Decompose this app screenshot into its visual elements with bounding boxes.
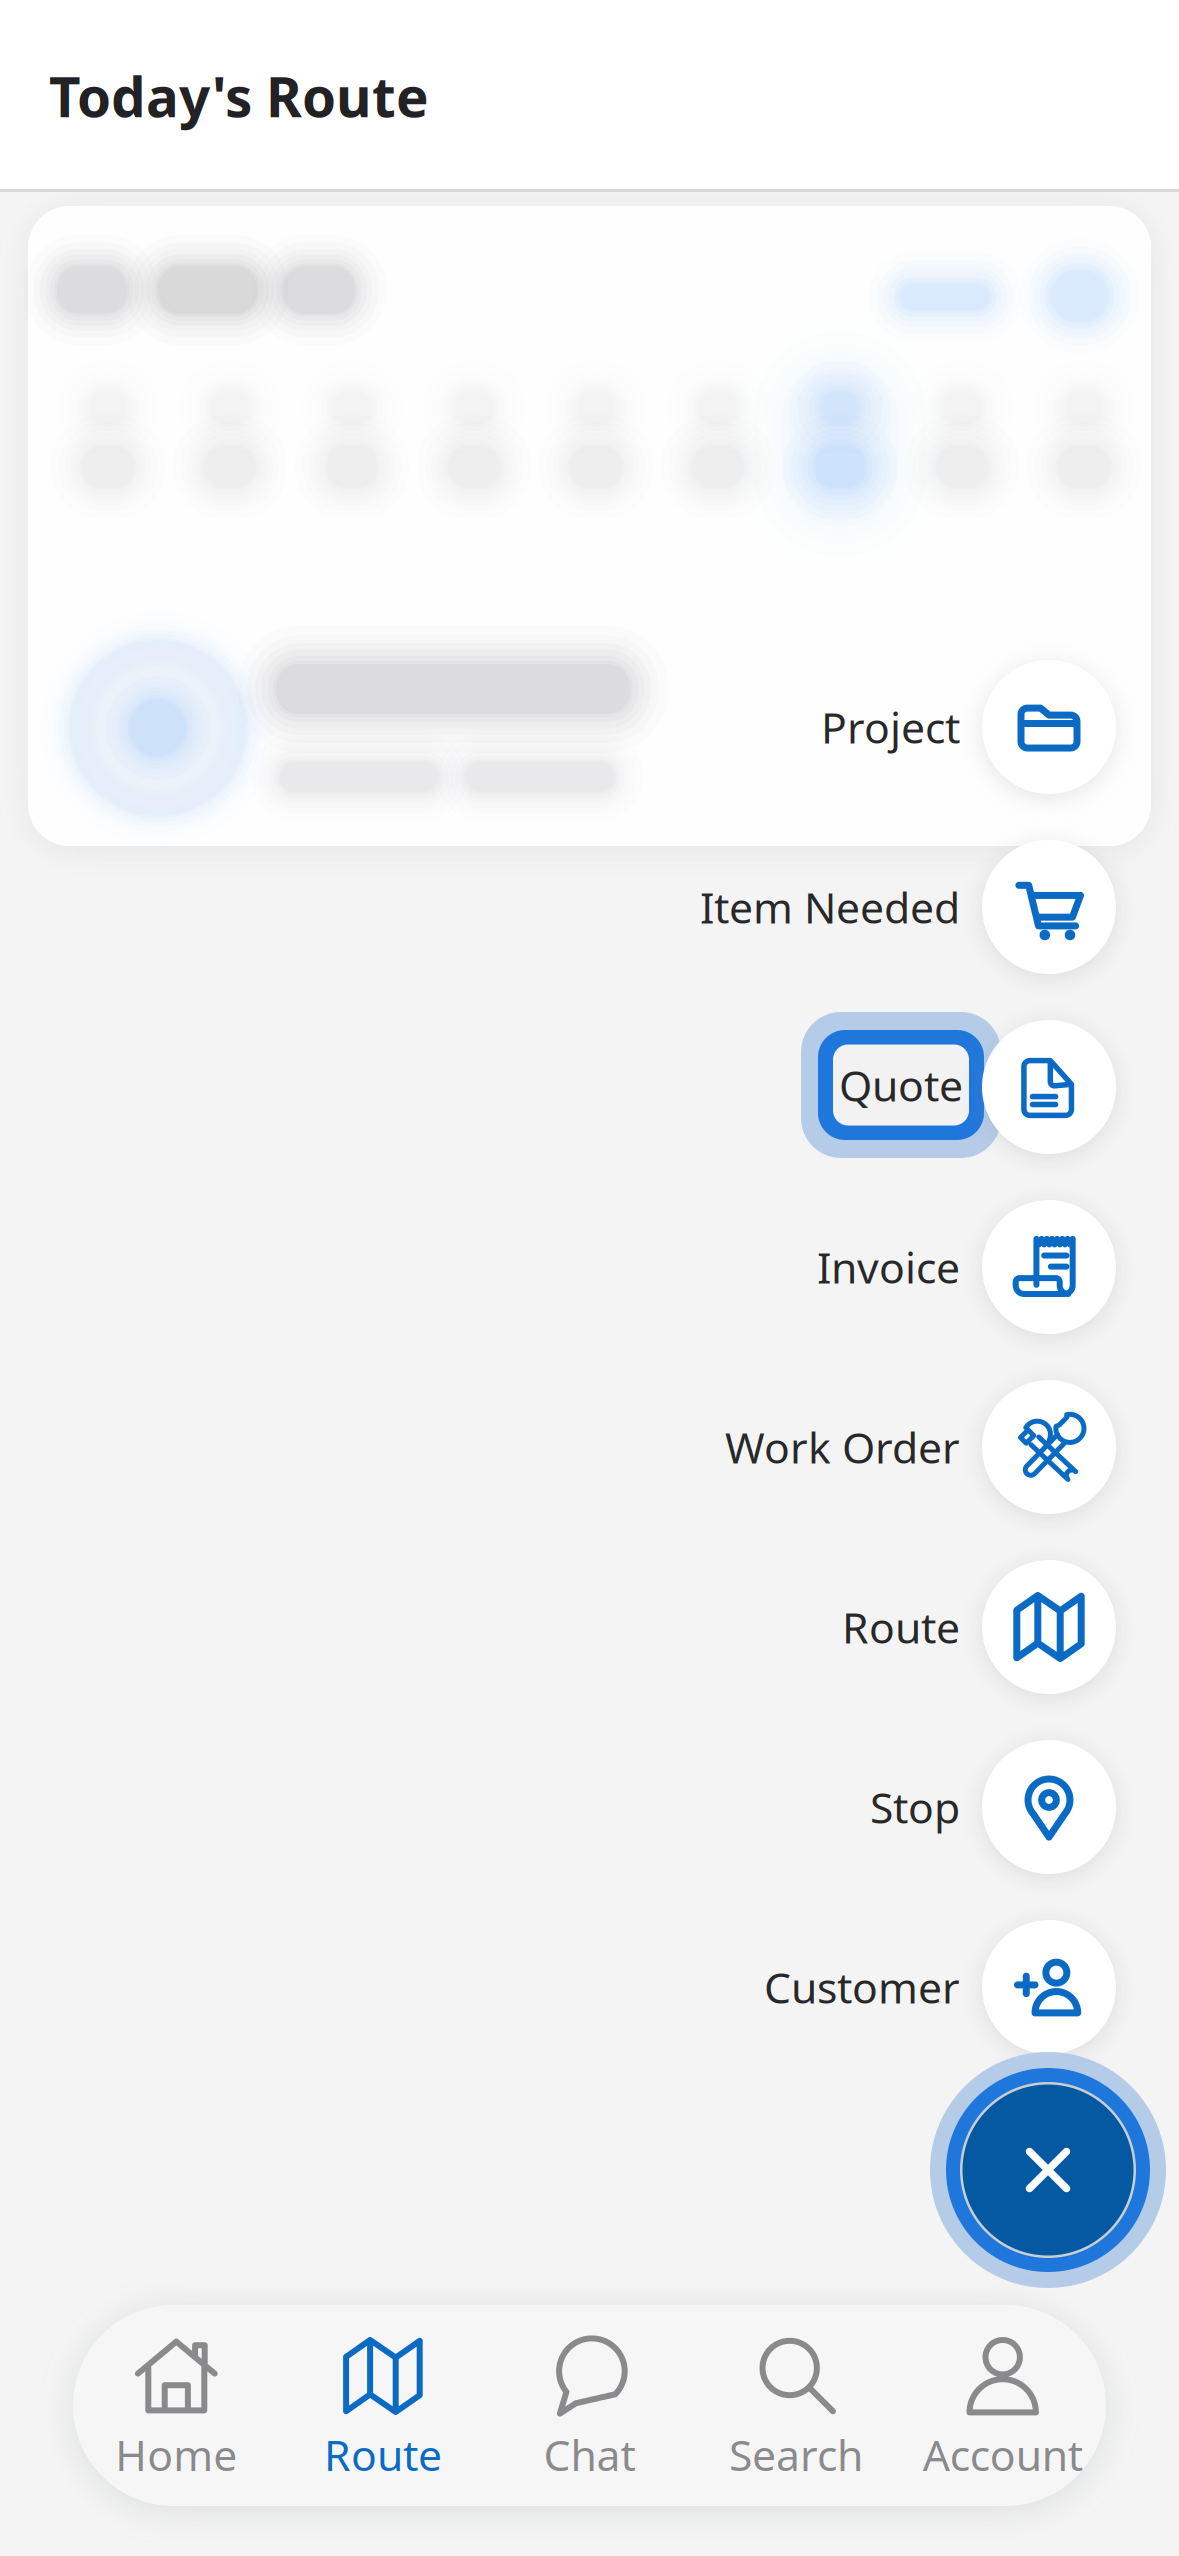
button[interactable]: Item Needed	[700, 879, 982, 935]
button[interactable]: Stop	[870, 1779, 982, 1835]
staticText: Customer	[764, 1959, 960, 2015]
button[interactable]: Search	[693, 2305, 899, 2506]
button[interactable]: Customer	[764, 1959, 982, 2015]
staticText: Invoice	[817, 1239, 960, 1295]
button[interactable]: Customer	[982, 1920, 1116, 2054]
staticText: Chat	[543, 2426, 635, 2483]
staticText: Account	[923, 2426, 1083, 2483]
button[interactable]: Close menu	[930, 2052, 1166, 2288]
staticText: Stop	[870, 1779, 960, 1835]
staticText: Search	[729, 2426, 863, 2483]
button[interactable]: Invoice	[817, 1239, 982, 1295]
button[interactable]: Route	[842, 1599, 982, 1655]
button[interactable]: Work Order	[982, 1380, 1116, 1514]
button[interactable]: Account	[899, 2305, 1106, 2506]
staticText: Quote	[839, 1057, 963, 1113]
staticText: Today's Route	[49, 60, 429, 132]
button[interactable]: Project	[821, 699, 982, 755]
button[interactable]: Stop	[982, 1740, 1116, 1874]
staticText: Project	[821, 699, 960, 755]
button[interactable]: Chat	[486, 2305, 693, 2506]
button[interactable]: Quote	[982, 1020, 1116, 1154]
button[interactable]: Route	[280, 2305, 486, 2506]
staticText: Home	[115, 2426, 237, 2483]
staticText: Route	[842, 1599, 960, 1655]
button[interactable]: Quote	[782, 1014, 982, 1160]
staticText: Item Needed	[700, 879, 960, 935]
button[interactable]: Work Order	[725, 1419, 982, 1475]
button[interactable]: Home	[73, 2305, 280, 2506]
button[interactable]: Item Needed	[982, 840, 1116, 974]
staticText: Route	[324, 2426, 442, 2483]
staticText: Work Order	[725, 1419, 960, 1475]
button[interactable]: Route	[982, 1560, 1116, 1694]
button[interactable]: Project	[982, 660, 1116, 794]
button[interactable]: Invoice	[982, 1200, 1116, 1334]
